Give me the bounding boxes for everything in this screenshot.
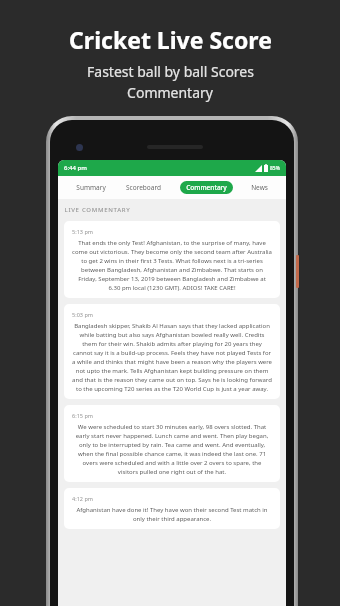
button[interactable]: 4:12 pm [64, 488, 280, 529]
staticText: 5:03 pm [72, 311, 93, 318]
staticText: 5:13 pm [72, 228, 93, 235]
staticText: Scoreboard [126, 183, 161, 192]
staticText: Commentary [186, 183, 227, 192]
button[interactable]: 5:13 pm [64, 221, 280, 298]
staticText: News [251, 183, 268, 192]
staticText: Fastest ball by ball Scores [87, 62, 254, 81]
staticText: 85% [270, 165, 280, 172]
staticText: 6:44 pm [64, 164, 87, 172]
staticText: Commentary [127, 83, 213, 102]
staticText: Afghanistan have done it! They have won … [72, 506, 272, 522]
button[interactable]: News [249, 181, 270, 194]
staticText: Bangladesh skipper, Shakib Al Hasan says… [72, 322, 272, 392]
button[interactable]: Commentary [180, 181, 233, 194]
staticText: 4:12 pm [72, 495, 93, 502]
staticText: 6:15 pm [72, 412, 93, 419]
staticText: Summary [76, 183, 106, 192]
staticText: That ends the only Test! Afghanistan, to… [72, 239, 272, 291]
staticText: LIVE COMMENTARY [64, 206, 131, 214]
button[interactable]: Scoreboard [124, 181, 163, 194]
button[interactable]: 6:15 pm [64, 405, 280, 482]
button[interactable]: Summary [74, 181, 108, 194]
staticText: Cricket Live Score [69, 24, 272, 55]
staticText: We were scheduled to start 30 minutes ea… [72, 423, 272, 475]
button[interactable]: 5:03 pm [64, 304, 280, 399]
